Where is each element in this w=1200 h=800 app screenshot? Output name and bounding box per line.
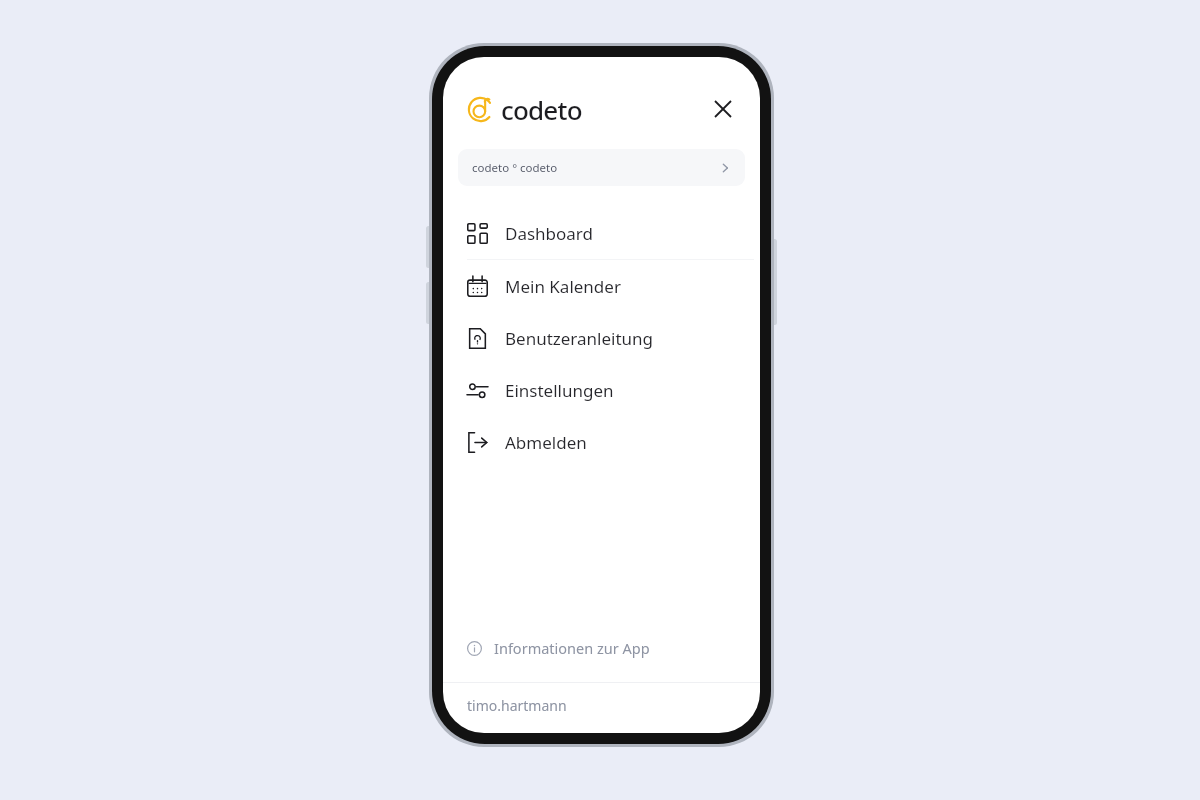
- staticText: Mein Kalender: [505, 275, 621, 298]
- staticText: Abmelden: [505, 431, 587, 454]
- staticText: codeto: [501, 92, 582, 127]
- staticText: Informationen zur App: [494, 638, 650, 658]
- staticText: Einstellungen: [505, 379, 614, 402]
- staticText: Benutzeranleitung: [505, 327, 654, 350]
- button[interactable]: Einstellungen: [443, 364, 760, 416]
- staticText: codeto ° codeto: [472, 160, 558, 176]
- button[interactable]: Dashboard: [443, 207, 760, 259]
- button[interactable]: Informationen zur App: [443, 627, 760, 669]
- button[interactable]: Benutzeranleitung: [443, 312, 760, 364]
- staticText: Dashboard: [505, 222, 594, 245]
- staticText: timo.hartmann: [467, 696, 567, 715]
- button[interactable]: codeto: [467, 92, 582, 127]
- button[interactable]: Abmelden: [443, 416, 760, 468]
- button[interactable]: Mein Kalender: [443, 260, 760, 312]
- button[interactable]: codeto ° codeto: [458, 149, 745, 186]
- button[interactable]: Close: [704, 90, 742, 128]
